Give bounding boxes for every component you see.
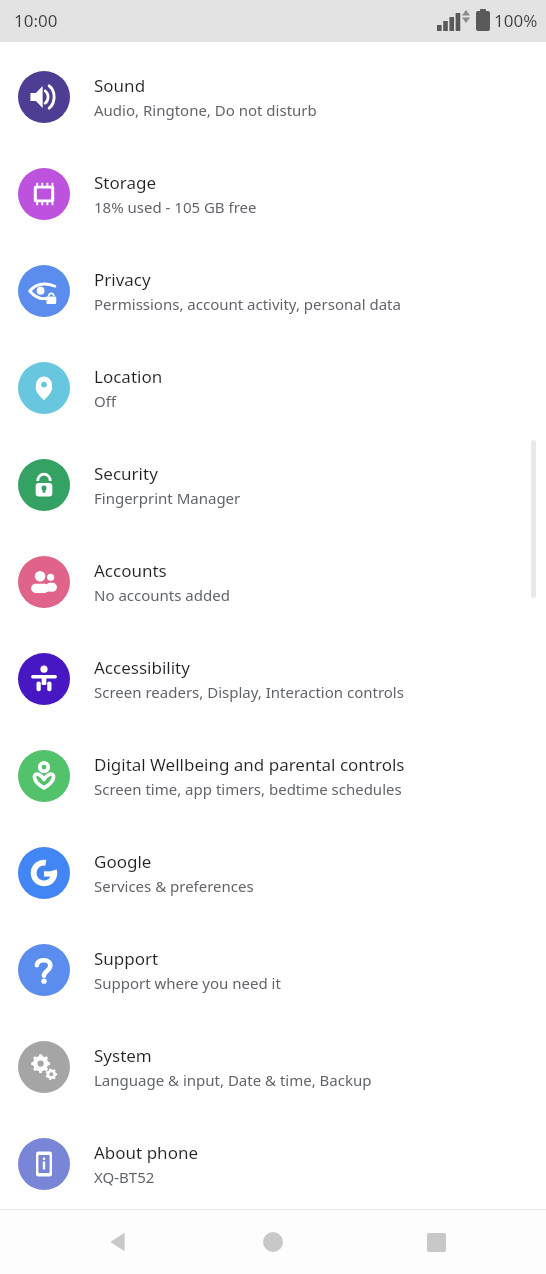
staticText: 18% used - 105 GB free [94,197,257,217]
button[interactable]: Location [0,339,546,436]
staticText: Location [94,365,163,388]
button[interactable]: Accessibility [0,630,546,727]
button[interactable]: Security [0,436,546,533]
staticText: Privacy [94,268,151,291]
staticText: Support where you need it [94,973,281,993]
staticText: 100% [494,9,538,32]
staticText: System [94,1044,152,1067]
staticText: XQ-BT52 [94,1167,155,1187]
button[interactable]: Recent apps [404,1210,468,1274]
staticText: Security [94,462,158,485]
button[interactable]: Storage [0,145,546,242]
staticText: No accounts added [94,585,230,605]
button[interactable]: Support [0,921,546,1018]
staticText: Google [94,850,152,873]
staticText: Digital Wellbeing and parental controls [94,753,405,776]
staticText: Accessibility [94,656,190,679]
button[interactable]: Home [241,1210,305,1274]
staticText: About phone [94,1141,199,1164]
button[interactable]: Back [86,1210,150,1274]
staticText: Permissions, account activity, personal … [94,294,401,314]
staticText: Accounts [94,559,167,582]
button[interactable]: Privacy [0,242,546,339]
staticText: Fingerprint Manager [94,488,241,508]
staticText: Sound [94,74,146,97]
staticText: Screen time, app timers, bedtime schedul… [94,779,402,799]
staticText: Support [94,947,159,970]
staticText: Off [94,391,117,411]
button[interactable]: System [0,1018,546,1115]
button[interactable]: Accounts [0,533,546,630]
staticText: 10:00 [14,9,58,32]
staticText: Storage [94,171,157,194]
button[interactable]: Sound [0,48,546,145]
staticText: Language & input, Date & time, Backup [94,1070,372,1090]
button[interactable]: Google [0,824,546,921]
button[interactable]: About phone [0,1115,546,1212]
staticText: Audio, Ringtone, Do not disturb [94,100,317,120]
button[interactable]: Digital Wellbeing and parental controls [0,727,546,824]
staticText: Services & preferences [94,876,254,896]
staticText: Screen readers, Display, Interaction con… [94,682,404,702]
